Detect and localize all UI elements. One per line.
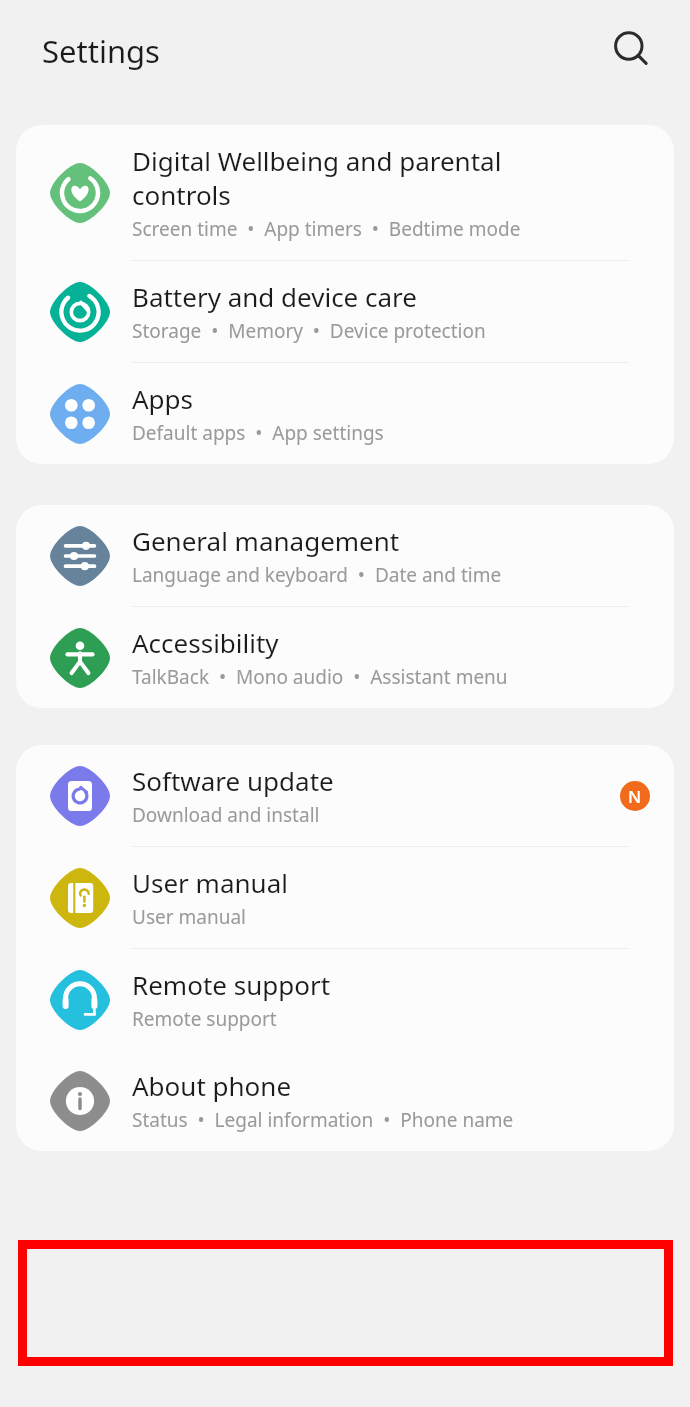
button[interactable]: Digital Wellbeing and parental controls	[16, 125, 674, 261]
staticText: Settings	[42, 30, 160, 72]
staticText: Battery and device care	[132, 279, 417, 314]
staticText: Accessibility	[132, 625, 279, 660]
staticText: Storage • Memory • Device protection	[132, 318, 486, 344]
staticText: About phone	[132, 1068, 292, 1103]
staticText: Default apps • App settings	[132, 420, 384, 446]
button[interactable]: Remote support	[16, 949, 674, 1050]
staticText: Remote support	[132, 967, 331, 1002]
staticText: Language and keyboard • Date and time	[132, 562, 502, 588]
staticText: Download and install	[132, 802, 320, 828]
button[interactable]: About phone	[16, 1050, 674, 1151]
staticText: User manual	[132, 865, 288, 900]
staticText: User manual	[132, 904, 246, 930]
staticText: Software update	[132, 763, 334, 798]
button[interactable]: Software update	[16, 745, 674, 847]
button[interactable]: User manual	[16, 847, 674, 949]
button[interactable]: Accessibility	[16, 607, 674, 708]
staticText: General management	[132, 523, 400, 558]
staticText: Screen time • App timers • Bedtime mode	[132, 216, 521, 242]
button[interactable]: General management	[16, 505, 674, 607]
button[interactable]: Battery and device care	[16, 261, 674, 363]
button[interactable]: Apps	[16, 363, 674, 464]
staticText: TalkBack • Mono audio • Assistant menu	[132, 664, 508, 690]
staticText: Remote support	[132, 1006, 277, 1032]
button[interactable]: Search	[604, 22, 660, 78]
staticText: Apps	[132, 381, 194, 416]
staticText: Digital Wellbeing and parental controls	[132, 143, 502, 212]
staticText: N	[628, 785, 642, 808]
staticText: Status • Legal information • Phone name	[132, 1107, 514, 1133]
